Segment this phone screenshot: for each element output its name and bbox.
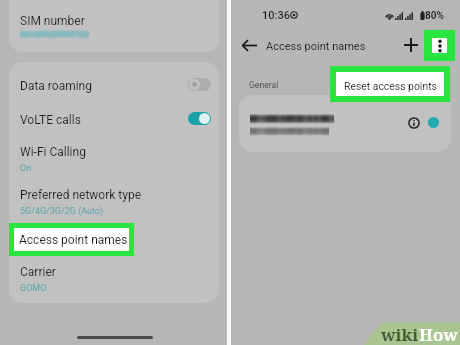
staticText: Access point names — [20, 233, 129, 247]
button[interactable]: Data roaming — [9, 66, 219, 105]
staticText: GOMO — [20, 283, 47, 294]
button[interactable]: Back — [237, 33, 261, 57]
button[interactable]: Add — [399, 33, 423, 57]
button[interactable]: Toggle on — [188, 112, 211, 125]
staticText: wiki — [381, 323, 419, 345]
staticText: Access point names — [266, 40, 366, 53]
button[interactable]: SIM number — [9, 0, 219, 52]
staticText: Wi-Fi Calling — [20, 145, 86, 159]
button[interactable]: Carrier — [9, 256, 219, 303]
button[interactable] — [239, 95, 451, 152]
button[interactable]: More options — [432, 38, 447, 53]
staticText: SIM number — [20, 14, 85, 28]
button[interactable]: Access point names — [9, 223, 219, 256]
staticText: Preferred network type — [20, 188, 142, 202]
staticText: How — [419, 323, 458, 345]
staticText: VoLTE calls — [20, 113, 81, 127]
staticText: On — [20, 163, 32, 174]
staticText: 10:36 — [262, 9, 290, 22]
staticText: 5G/4G/3G/2G (Auto) — [20, 206, 104, 217]
staticText: Carrier — [20, 265, 56, 279]
button[interactable]: Wi-Fi Calling — [9, 136, 219, 182]
staticText: Access point names — [19, 233, 128, 247]
staticText: General — [249, 80, 279, 90]
staticText: Data roaming — [20, 79, 92, 93]
staticText: Reset access points — [344, 80, 437, 92]
staticText: 80% — [425, 10, 444, 22]
button[interactable]: VoLTE calls — [9, 104, 219, 135]
button[interactable]: Toggle off — [188, 78, 211, 91]
button[interactable]: Preferred network type — [9, 180, 219, 225]
